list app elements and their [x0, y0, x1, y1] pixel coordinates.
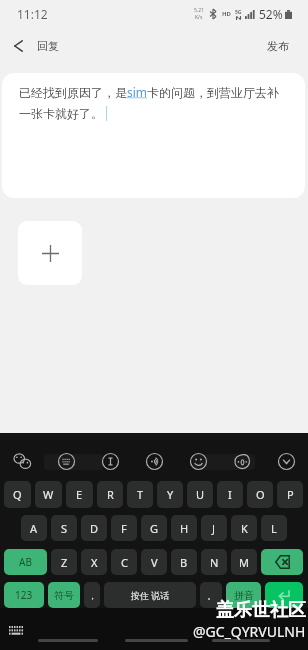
button[interactable]: G [141, 515, 167, 541]
staticText: 拼音 [234, 589, 254, 602]
button[interactable]: Voice [132, 441, 176, 481]
button[interactable]: WeChat [0, 441, 44, 481]
button[interactable]: B [171, 549, 197, 575]
staticText: ， [88, 590, 97, 601]
button[interactable]: Switch keyboard [9, 626, 24, 636]
staticText: 符号 [54, 589, 74, 602]
staticText: 123 [15, 588, 33, 602]
button[interactable]: I [217, 481, 243, 508]
button[interactable]: S [51, 515, 77, 541]
button[interactable]: Y [157, 481, 183, 508]
button[interactable]: L [261, 515, 287, 541]
staticText: P [287, 487, 294, 502]
button[interactable]: 符号 [48, 582, 80, 608]
staticText: X [91, 555, 98, 570]
button[interactable]: Z [51, 549, 77, 575]
button[interactable]: V [141, 549, 167, 575]
button[interactable]: J [201, 515, 227, 541]
staticText: A [30, 521, 38, 536]
staticText: 52% [259, 6, 283, 22]
staticText: L [271, 521, 277, 536]
staticText: HD [222, 10, 231, 18]
button[interactable]: C [111, 549, 137, 575]
staticText: 11:12 [17, 6, 48, 22]
button[interactable]: H [171, 515, 197, 541]
staticText: O [256, 487, 265, 502]
staticText: 发布 [267, 39, 289, 53]
button[interactable]: M [231, 549, 257, 575]
staticText: G [150, 521, 159, 536]
staticText: Q [13, 487, 22, 502]
button[interactable]: 123 [4, 582, 44, 608]
staticText: W [43, 487, 54, 502]
button[interactable]: D [81, 515, 107, 541]
button[interactable]: Back [0, 27, 71, 64]
staticText: 按住 说话 [131, 589, 170, 601]
button[interactable]: 拼音 [226, 582, 261, 608]
staticText: S [61, 521, 68, 536]
staticText: U [196, 487, 205, 502]
staticText: 5G [235, 9, 242, 16]
staticText: I [228, 487, 232, 502]
button[interactable]: Backspace [261, 549, 303, 575]
staticText: J [212, 521, 216, 536]
button[interactable]: X [81, 549, 107, 575]
staticText: 。 [207, 590, 216, 601]
staticText: 回复 [37, 39, 59, 53]
other: Back [14, 40, 23, 52]
button[interactable]: K [231, 515, 257, 541]
staticText: B [180, 555, 188, 570]
button[interactable]: Emoji [176, 441, 220, 481]
button[interactable]: E [66, 481, 93, 508]
button[interactable]: 已经找到原因了，是sim卡的问题，到营业厅去补一张卡就好了。 [2, 73, 305, 198]
staticText: 5.21 [194, 7, 204, 14]
button[interactable]: Keyboard [44, 441, 88, 481]
staticText: M [239, 555, 249, 570]
staticText: E [76, 487, 83, 502]
staticText: T [137, 487, 144, 502]
staticText: Y [167, 487, 174, 502]
staticText: N [210, 555, 219, 570]
staticText: AB [19, 555, 32, 569]
button[interactable]: F [111, 515, 137, 541]
button[interactable]: 按住 说话 [104, 582, 196, 608]
button[interactable]: O [247, 481, 273, 508]
button[interactable]: 。 [200, 582, 222, 608]
button[interactable]: AB [4, 549, 47, 575]
button[interactable]: U [187, 481, 213, 508]
staticText: 已经找到原因了，是sim卡的问题，到营业厅去补一张卡就好了。 [19, 84, 283, 121]
button[interactable]: W [35, 481, 62, 508]
button[interactable]: Collapse keyboard [264, 441, 308, 481]
staticText: @GC_QYRVULNH [193, 622, 306, 641]
staticText: 盖乐世社区 [216, 599, 306, 622]
staticText: D [90, 521, 99, 536]
staticText: R [107, 487, 114, 502]
button[interactable]: ， [84, 582, 100, 608]
staticText: H [180, 521, 189, 536]
staticText: K/s [195, 14, 203, 21]
button[interactable]: P [277, 481, 303, 508]
button[interactable]: 发布 [247, 27, 308, 64]
button[interactable]: Text input [88, 441, 132, 481]
staticText: Z [61, 555, 68, 570]
button[interactable]: Q [4, 481, 31, 508]
button[interactable]: R [97, 481, 123, 508]
button[interactable]: Enter [265, 582, 303, 608]
staticText: K [241, 521, 248, 536]
staticText: F [121, 521, 127, 536]
button[interactable]: T [127, 481, 153, 508]
staticText: C [121, 555, 128, 570]
button[interactable]: N [201, 549, 227, 575]
button[interactable]: Settings [220, 441, 264, 481]
staticText: V [151, 555, 158, 570]
button[interactable]: A [21, 515, 47, 541]
button[interactable]: Add image [18, 221, 82, 285]
